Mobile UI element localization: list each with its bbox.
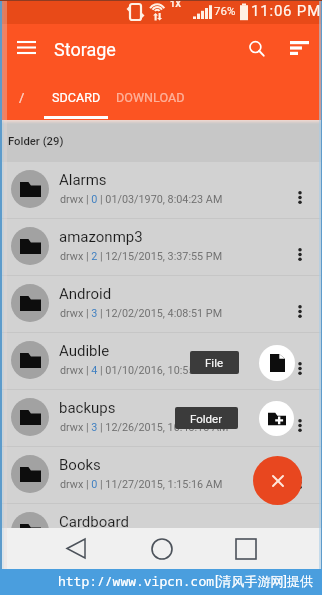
staticText: / [19,90,25,105]
staticText: http://www.vipcn.com [58,572,215,590]
button[interactable]: SDCARD [44,74,108,121]
button[interactable]: Close actions [253,456,302,505]
staticText: Folder [190,412,223,425]
button[interactable]: / [0,74,44,121]
staticText: drwx | 0 | 01/03/1970, 8:04:23 AM [60,193,223,206]
button[interactable]: Folder [175,407,238,429]
staticText: 76% [214,4,236,18]
staticText: backups [59,399,116,417]
button[interactable]: Back [54,528,98,569]
button[interactable]: DOWNLOAD [108,74,193,121]
button[interactable]: More options [287,276,313,333]
staticText: File [205,356,224,369]
button[interactable]: File [190,351,239,374]
button[interactable]: Alarms [0,162,322,219]
button[interactable]: Search [239,31,274,66]
button[interactable]: More options [287,219,313,276]
staticText: DOWNLOAD [116,90,185,105]
button[interactable]: Create folder [259,401,294,436]
staticText: Cardboard [59,513,129,531]
button[interactable]: More options [287,504,313,561]
button[interactable]: Sort [282,30,317,65]
button[interactable]: amazonmp3 [0,219,322,276]
button[interactable]: Navigation menu [9,30,43,64]
staticText: drwx | 3 | 12/26/2015, 10:43:18 AM [60,421,229,434]
button[interactable]: Books [0,447,322,504]
button[interactable]: More options [287,333,313,390]
staticText: SDCARD [52,90,101,105]
button[interactable]: More options [287,447,313,504]
staticText: drwx | 0 | 11/27/2015, 1:15:16 AM [60,478,223,491]
button[interactable]: Recent apps [223,528,268,569]
button[interactable]: More options [287,390,313,447]
staticText: drwx | 4 | 01/10/2016, 10:55:26 PM [60,364,229,377]
staticText: Audible [59,342,110,360]
staticText: Storage [54,39,116,60]
button[interactable]: backups [0,390,322,447]
button[interactable]: Create file [259,345,295,381]
button[interactable]: Home [139,528,184,569]
button[interactable]: Android [0,276,322,333]
staticText: amazonmp3 [59,228,143,246]
staticText: [清风手游网]提供 [215,573,313,589]
button[interactable]: Audible [0,333,322,390]
staticText: Android [59,285,112,303]
button[interactable]: Cardboard [0,504,322,561]
staticText: drwx | 1 | 12/02/2015, 4:08:51 PM [60,535,223,548]
staticText: drwx | 3 | 12/02/2015, 4:08:51 PM [60,307,223,320]
button[interactable]: More options [287,162,313,219]
staticText: 1X [170,0,181,10]
staticText: drwx | 2 | 12/15/2015, 3:37:55 PM [60,250,223,263]
staticText: Books [59,456,101,474]
staticText: 11:06 PM [251,2,322,20]
staticText: Alarms [59,171,107,189]
staticText: Folder (29) [8,135,64,148]
